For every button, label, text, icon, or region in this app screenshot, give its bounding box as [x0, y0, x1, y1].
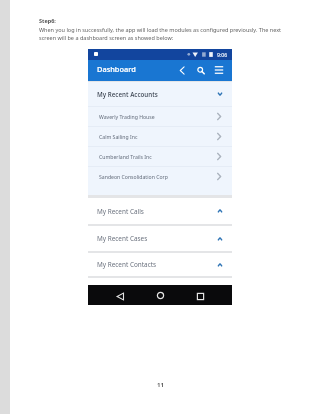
staticText: My Recent Accounts: [97, 90, 158, 98]
staticText: Step6:: [39, 17, 56, 24]
button[interactable]: Home: [151, 286, 169, 304]
staticText: When you log in successfully, the app wi…: [39, 26, 282, 33]
button[interactable]: Calm Sailing Inc: [88, 126, 232, 146]
button[interactable]: My Recent Calls: [88, 198, 232, 224]
staticText: 9:06: [217, 51, 228, 58]
button[interactable]: My Recent Accounts: [88, 82, 232, 106]
staticText: My Recent Contacts: [97, 260, 157, 269]
staticText: Cumberland Trails Inc: [99, 153, 152, 160]
button[interactable]: Search: [192, 62, 208, 78]
button[interactable]: Back: [175, 62, 191, 78]
staticText: Calm Sailing Inc: [99, 133, 138, 140]
button[interactable]: Sandeon Consolidation Corp: [88, 166, 232, 186]
staticText: My Recent Cases: [97, 234, 148, 243]
button[interactable]: Back: [111, 287, 129, 305]
staticText: 11: [157, 381, 164, 389]
button[interactable]: My Recent Cases: [88, 226, 232, 251]
button[interactable]: Menu: [211, 62, 227, 78]
staticText: Sandeon Consolidation Corp: [99, 173, 168, 180]
staticText: Dashboard: [97, 64, 136, 74]
button[interactable]: Recents: [191, 287, 209, 305]
staticText: screen will be a dashboard screen as sho…: [39, 34, 174, 41]
button[interactable]: Cumberland Trails Inc: [88, 146, 232, 166]
staticText: My Recent Calls: [97, 207, 144, 216]
button[interactable]: My Recent Contacts: [88, 253, 232, 276]
button[interactable]: Waverly Trading House: [88, 106, 232, 126]
staticText: Waverly Trading House: [99, 113, 155, 120]
